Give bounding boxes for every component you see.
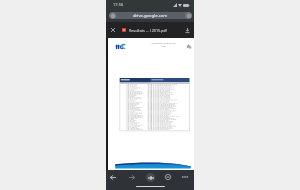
other: Site information bbox=[109, 12, 116, 19]
button[interactable]: Back bbox=[107, 171, 119, 183]
button[interactable]: drive.google.com bbox=[109, 12, 192, 19]
staticText: 2015 bbox=[161, 45, 166, 48]
staticText: 17:56 bbox=[113, 2, 124, 7]
button[interactable]: Tabs bbox=[162, 171, 174, 183]
button[interactable]: More options bbox=[179, 171, 191, 183]
button[interactable]: Forward bbox=[126, 171, 138, 183]
staticText: drive.google.com bbox=[133, 13, 168, 19]
button[interactable]: Download bbox=[180, 23, 194, 37]
other: Share bbox=[185, 12, 192, 19]
staticText: CHAMPIONNAT DE FRANCE bbox=[151, 42, 176, 45]
button[interactable]: New tab bbox=[146, 173, 155, 182]
staticText: Resultats ... l 2015.pdf bbox=[129, 28, 167, 33]
button[interactable]: Close bbox=[106, 23, 120, 37]
